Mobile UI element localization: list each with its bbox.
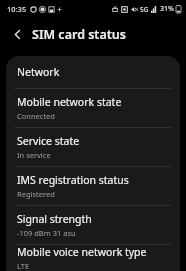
staticText: Service state xyxy=(17,134,80,148)
staticText: 31% xyxy=(160,4,174,14)
staticText: IMS registration status xyxy=(17,173,129,187)
staticText: Network xyxy=(17,65,60,79)
staticText: -109 dBm 31 asu xyxy=(17,228,76,238)
staticText: Registered xyxy=(17,189,55,199)
staticText: 5G xyxy=(140,5,149,14)
staticText: 10:35 xyxy=(7,4,27,14)
button[interactable]: Mobile voice network type xyxy=(6,245,180,271)
staticText: Connected xyxy=(17,111,55,121)
staticText: LTE xyxy=(17,261,30,271)
button[interactable]: Network xyxy=(6,56,180,88)
button[interactable]: IMS registration status xyxy=(6,167,180,205)
staticText: In service xyxy=(17,150,51,160)
staticText: SIM card status xyxy=(32,26,126,43)
staticText: Signal strength xyxy=(17,212,92,226)
button[interactable]: Signal strength xyxy=(6,206,180,244)
staticText: Mobile voice network type xyxy=(17,245,147,259)
staticText: Mobile network state xyxy=(17,95,122,109)
button[interactable]: Back xyxy=(6,23,28,45)
button[interactable]: Service state xyxy=(6,128,180,166)
button[interactable]: Mobile network state xyxy=(6,89,180,127)
